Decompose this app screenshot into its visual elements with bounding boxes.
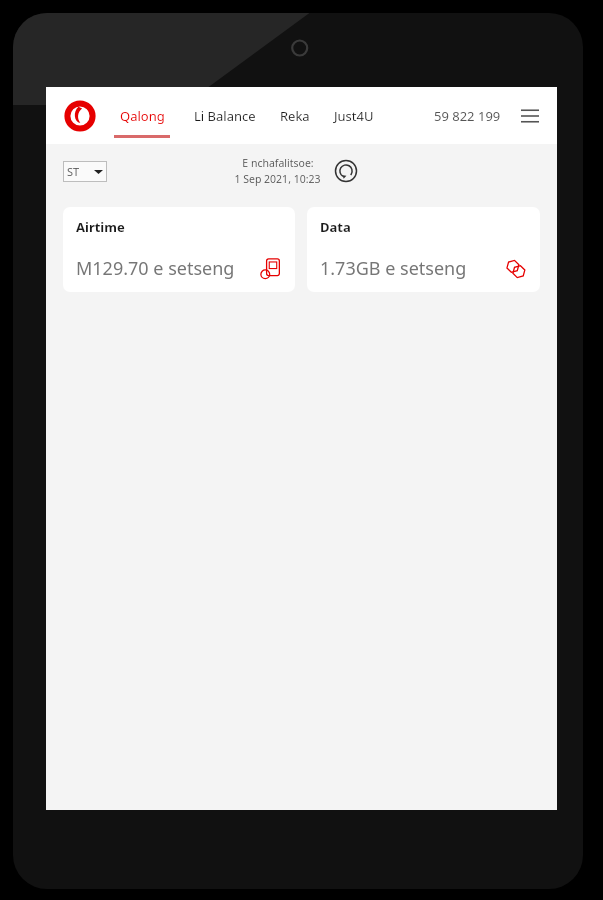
- button[interactable]: Reka: [280, 87, 310, 144]
- button[interactable]: Vodafone home: [60, 96, 100, 136]
- staticText: M129.70 e setseng: [76, 256, 235, 281]
- button[interactable]: Li Balance: [194, 87, 256, 144]
- staticText: Reka: [280, 107, 310, 125]
- button[interactable]: Qalong: [114, 87, 170, 144]
- staticText: ST: [67, 164, 80, 179]
- button[interactable]: ST: [63, 161, 107, 182]
- staticText: 59 822 199: [434, 107, 501, 125]
- staticText: Just4U: [334, 107, 374, 125]
- button[interactable]: Refresh: [331, 156, 361, 186]
- staticText: 1.73GB e setseng: [320, 256, 467, 281]
- staticText: Data: [320, 218, 351, 236]
- staticText: Li Balance: [194, 107, 256, 125]
- staticText: Airtime: [76, 218, 125, 236]
- button[interactable]: 59 822 199: [430, 101, 505, 131]
- button[interactable]: Just4U: [334, 87, 374, 144]
- staticText: Qalong: [120, 107, 165, 125]
- button[interactable]: Menu: [517, 103, 543, 129]
- button[interactable]: Data: [307, 207, 540, 292]
- staticText: E nchafalitsoe:: [242, 156, 314, 170]
- button[interactable]: Airtime: [63, 207, 295, 292]
- staticText: 1 Sep 2021, 10:23: [234, 172, 321, 186]
